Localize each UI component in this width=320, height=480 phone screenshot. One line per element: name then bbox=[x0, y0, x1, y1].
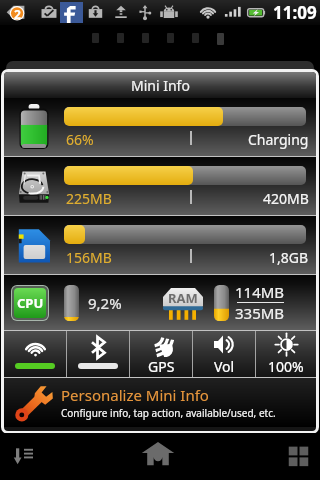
staticText: 156MB bbox=[66, 248, 112, 267]
staticText: 2 bbox=[14, 6, 21, 22]
staticText: 1,8GB bbox=[269, 248, 309, 267]
button[interactable]: 66% bbox=[4, 98, 316, 156]
button[interactable]: 156MB bbox=[4, 216, 316, 274]
button[interactable]: GPS bbox=[130, 331, 192, 377]
button[interactable]: Personalize Mini Info bbox=[4, 378, 316, 427]
staticText: 420MB bbox=[263, 189, 309, 208]
staticText: 66% bbox=[66, 130, 94, 149]
staticText: CPU bbox=[17, 294, 44, 312]
staticText: 335MB bbox=[235, 303, 285, 323]
button[interactable]: Wifi bbox=[4, 331, 66, 377]
staticText: Charging bbox=[248, 130, 309, 149]
staticText: Personalize Mini Info bbox=[61, 385, 209, 405]
button[interactable]: Menu bbox=[0, 433, 107, 480]
button[interactable]: Volume bbox=[193, 331, 255, 377]
staticText: 9,2% bbox=[88, 293, 122, 313]
button[interactable]: Bluetooth bbox=[67, 331, 129, 377]
staticText: 100% bbox=[268, 357, 304, 376]
staticText: RAM bbox=[168, 289, 198, 307]
staticText: 114MB bbox=[235, 282, 285, 302]
button[interactable]: Home bbox=[107, 433, 213, 480]
button[interactable]: Brightness bbox=[256, 331, 316, 377]
staticText: 11:09 bbox=[273, 1, 317, 24]
button[interactable]: CPU bbox=[4, 275, 154, 330]
button[interactable]: Apps bbox=[213, 433, 320, 480]
staticText: Configure info, tap action, available/us… bbox=[61, 406, 276, 420]
staticText: Vol bbox=[214, 357, 235, 376]
button[interactable]: 225MB bbox=[4, 157, 316, 215]
button[interactable]: RAM bbox=[154, 275, 294, 330]
staticText: 225MB bbox=[66, 189, 112, 208]
staticText: GPS bbox=[148, 357, 175, 376]
staticText: Mini Info bbox=[131, 76, 190, 95]
